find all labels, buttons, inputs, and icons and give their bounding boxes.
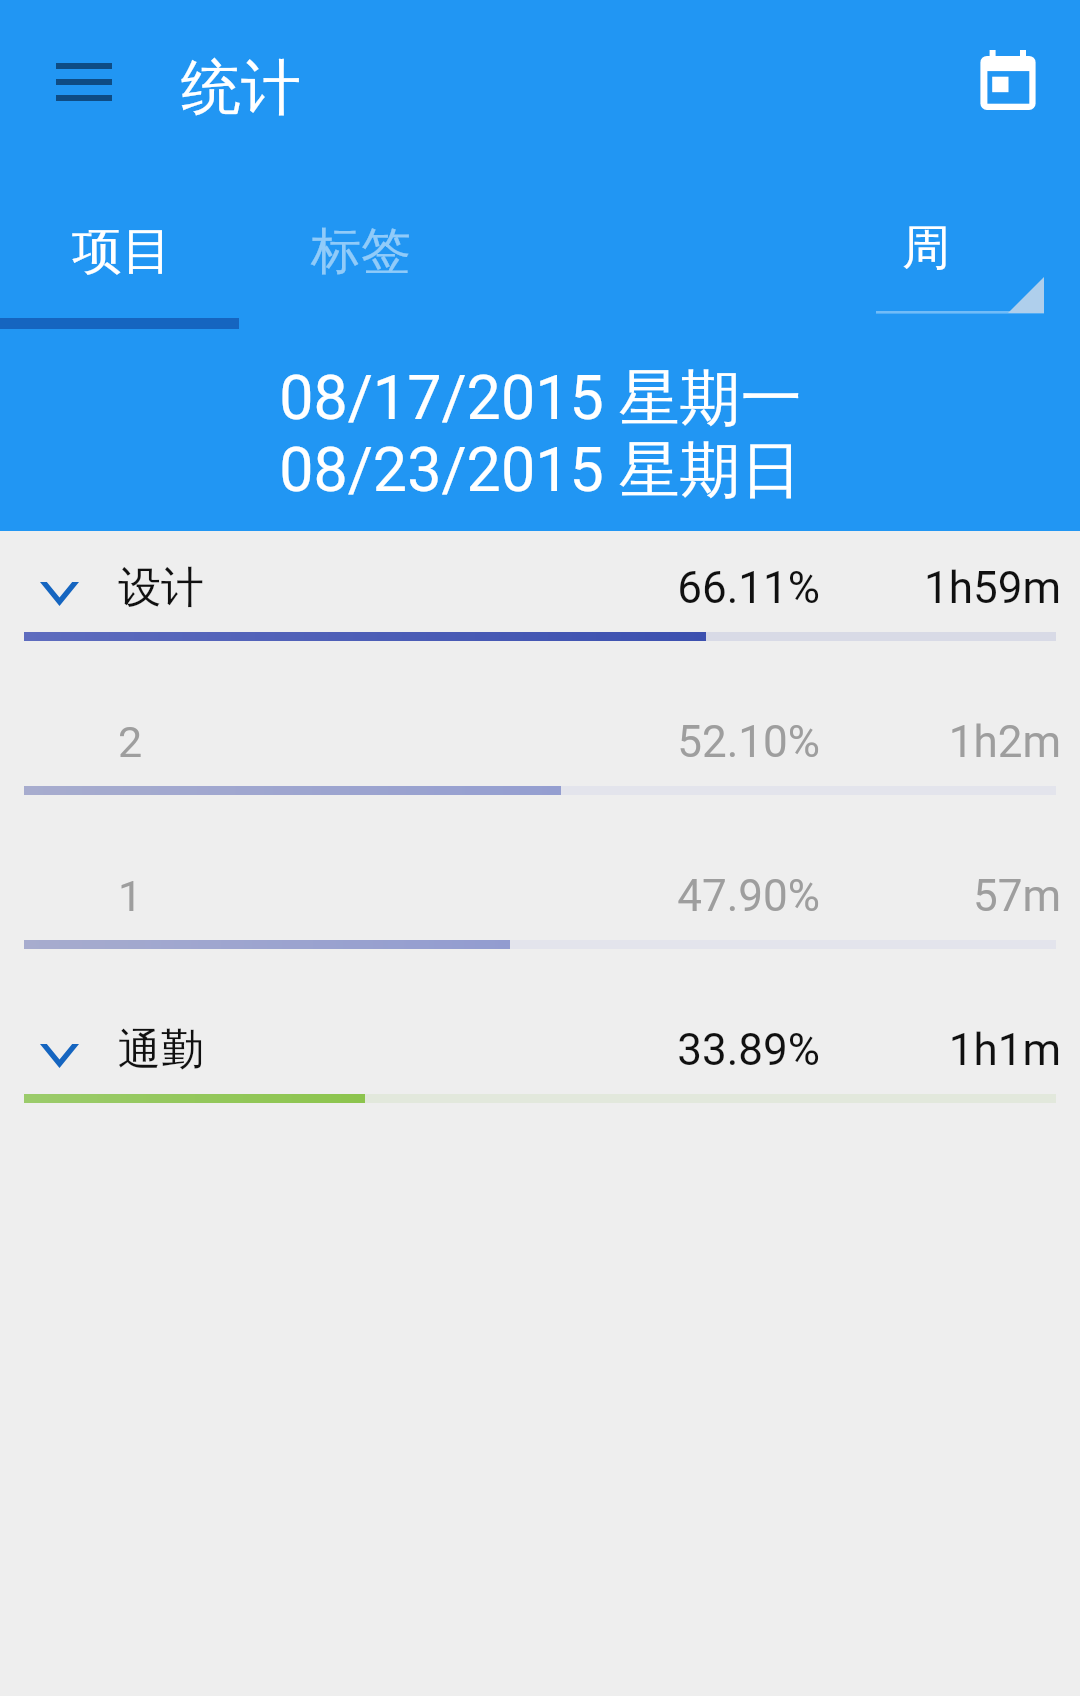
staticText: 47.90% [677, 870, 820, 922]
staticText: 57m [972, 870, 1061, 922]
staticText: 1h2m [948, 716, 1061, 768]
staticText: 统计 [181, 50, 301, 126]
staticText: 周 [902, 218, 950, 278]
button[interactable]: 标签 [243, 194, 478, 333]
button[interactable]: 设计 [0, 531, 1080, 685]
button[interactable]: Calendar [962, 34, 1054, 126]
staticText: 1h1m [948, 1024, 1061, 1076]
button[interactable]: 1 [0, 839, 1080, 993]
staticText: 标签 [311, 220, 411, 283]
staticText: 2 [118, 717, 143, 767]
button[interactable]: 2 [0, 685, 1080, 839]
staticText: 33.89% [677, 1024, 820, 1076]
staticText: 通勤 [118, 1023, 204, 1077]
button[interactable]: Period selector [860, 196, 1060, 326]
button[interactable]: 通勤 [0, 993, 1080, 1147]
staticText: 设计 [118, 561, 204, 615]
button[interactable]: Menu [28, 40, 140, 124]
staticText: 52.10% [677, 716, 820, 768]
staticText: 1 [118, 871, 143, 921]
staticText: 08/17/2015 星期一 08/23/2015 星期日 [279, 360, 802, 510]
staticText: 1h59m [923, 562, 1061, 614]
staticText: 66.11% [677, 562, 820, 614]
button[interactable]: 项目 [0, 194, 243, 333]
staticText: 项目 [72, 220, 172, 283]
